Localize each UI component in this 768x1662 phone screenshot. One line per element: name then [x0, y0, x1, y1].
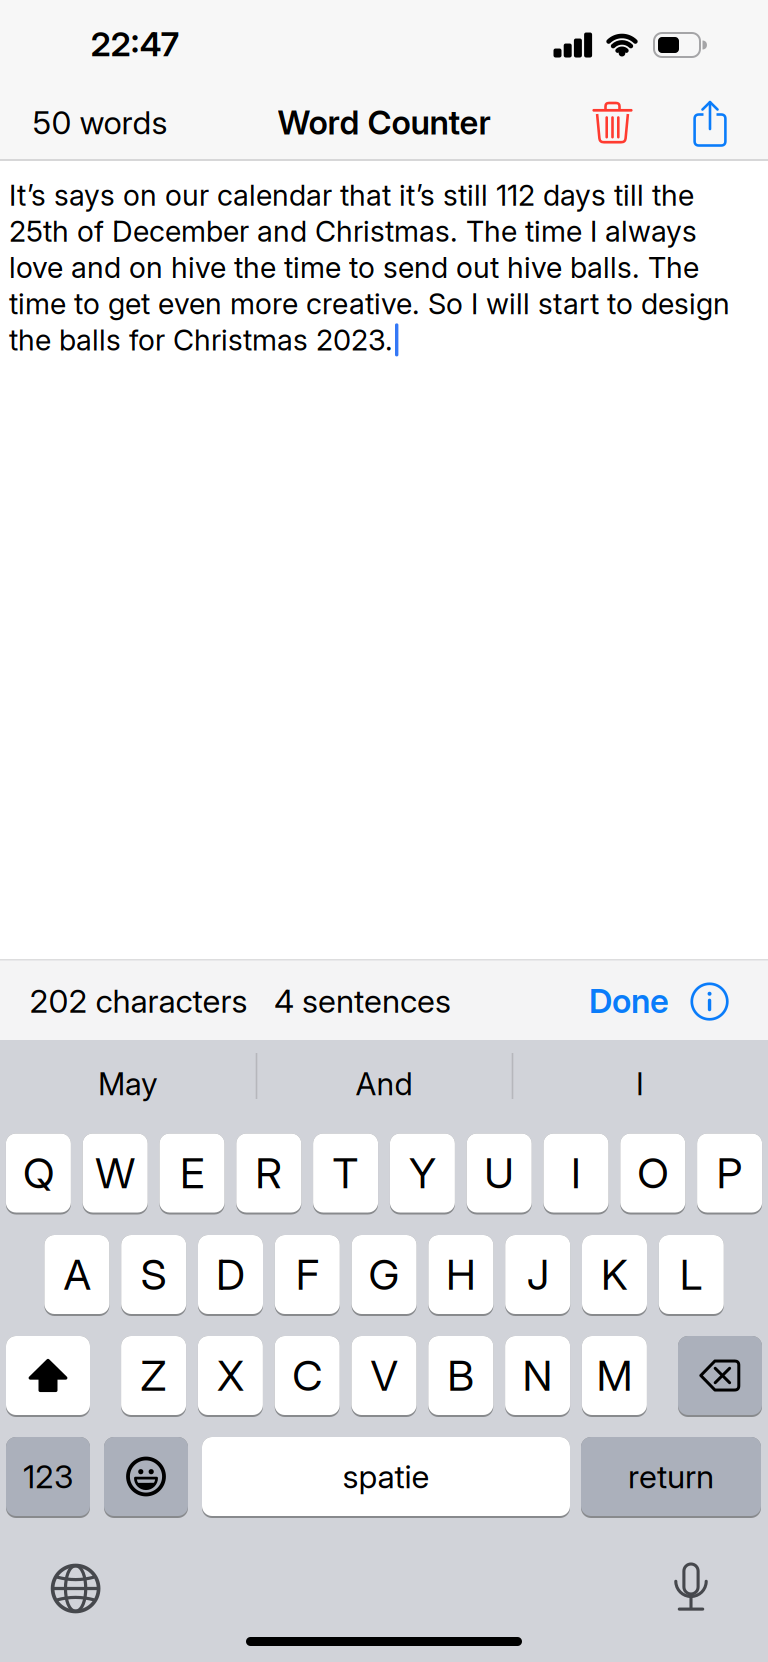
staticText: 202 characters: [29, 982, 247, 1020]
button[interactable]: X: [198, 1336, 263, 1417]
button[interactable]: Share: [692, 99, 728, 147]
staticText: Word Counter: [277, 102, 490, 142]
staticText: spatie: [342, 1457, 429, 1496]
staticText: 123: [23, 1457, 73, 1496]
button[interactable]: N: [505, 1336, 570, 1417]
button[interactable]: L: [659, 1235, 724, 1316]
staticText: P: [717, 1148, 743, 1198]
staticText: I: [636, 1065, 644, 1103]
button[interactable]: Z: [121, 1336, 186, 1417]
staticText: R: [255, 1148, 282, 1198]
button[interactable]: Shift: [6, 1336, 90, 1417]
button[interactable]: May: [8, 1046, 248, 1122]
staticText: W: [95, 1148, 135, 1198]
button[interactable]: E: [159, 1133, 224, 1214]
staticText: Z: [141, 1350, 167, 1401]
button[interactable]: F: [275, 1235, 340, 1316]
staticText: 4 sentences: [274, 982, 451, 1020]
staticText: N: [523, 1350, 553, 1401]
button[interactable]: U: [467, 1133, 532, 1214]
staticText: U: [484, 1148, 514, 1198]
staticText: L: [680, 1249, 703, 1300]
staticText: And: [355, 1065, 412, 1103]
staticText: F: [296, 1249, 319, 1300]
button[interactable]: Emoji: [104, 1437, 188, 1518]
button[interactable]: S: [121, 1235, 186, 1316]
button[interactable]: J: [505, 1235, 570, 1316]
staticText: Done: [589, 981, 669, 1021]
staticText: C: [292, 1350, 322, 1401]
button[interactable]: P: [697, 1133, 762, 1214]
button[interactable]: Numbers: [6, 1437, 90, 1518]
staticText: O: [637, 1148, 668, 1198]
button[interactable]: Delete: [592, 100, 632, 145]
staticText: S: [141, 1249, 167, 1300]
button[interactable]: Info: [692, 984, 727, 1019]
button[interactable]: Space: [202, 1437, 570, 1518]
button[interactable]: Dictate: [673, 1561, 709, 1611]
staticText: return: [628, 1457, 714, 1496]
staticText: time to get even more creative. So I wil…: [9, 286, 730, 321]
button[interactable]: D: [198, 1235, 263, 1316]
staticText: love and on hive the time to send out hi…: [9, 250, 699, 285]
button[interactable]: Return: [581, 1437, 761, 1518]
staticText: E: [180, 1148, 204, 1198]
staticText: X: [217, 1350, 244, 1401]
button[interactable]: Y: [390, 1133, 455, 1214]
button[interactable]: T: [313, 1133, 378, 1214]
button[interactable]: O: [620, 1133, 685, 1214]
staticText: H: [446, 1249, 476, 1300]
button[interactable]: C: [275, 1336, 340, 1417]
button[interactable]: V: [351, 1336, 416, 1417]
staticText: G: [369, 1249, 400, 1300]
button[interactable]: B: [428, 1336, 493, 1417]
button[interactable]: Delete backward: [678, 1336, 762, 1417]
staticText: V: [370, 1350, 397, 1401]
staticText: Y: [409, 1148, 436, 1198]
button[interactable]: I: [543, 1133, 608, 1214]
button[interactable]: A: [44, 1235, 109, 1316]
button[interactable]: H: [428, 1235, 493, 1316]
button[interactable]: R: [236, 1133, 301, 1214]
staticText: 22:47: [90, 23, 179, 64]
staticText: It’s says on our calendar that it’s stil…: [9, 178, 694, 213]
staticText: T: [333, 1148, 359, 1198]
button[interactable]: K: [582, 1235, 647, 1316]
staticText: Q: [23, 1148, 54, 1198]
button[interactable]: And: [264, 1046, 504, 1122]
staticText: J: [527, 1249, 549, 1300]
button[interactable]: W: [83, 1133, 148, 1214]
staticText: the balls for Christmas 2023.: [9, 322, 393, 357]
button[interactable]: I: [520, 1046, 760, 1122]
button[interactable]: Q: [6, 1133, 71, 1214]
staticText: B: [447, 1350, 474, 1401]
staticText: May: [98, 1065, 158, 1103]
button[interactable]: Done: [589, 981, 669, 1021]
staticText: I: [571, 1148, 581, 1198]
staticText: K: [601, 1249, 628, 1300]
button[interactable]: Next keyboard: [52, 1564, 100, 1612]
button[interactable]: G: [352, 1235, 417, 1316]
staticText: 25th of December and Christmas. The time…: [9, 214, 697, 249]
staticText: A: [63, 1249, 90, 1300]
button[interactable]: M: [582, 1336, 647, 1417]
staticText: D: [216, 1249, 245, 1300]
staticText: M: [596, 1350, 632, 1401]
staticText: 50 words: [32, 103, 167, 142]
